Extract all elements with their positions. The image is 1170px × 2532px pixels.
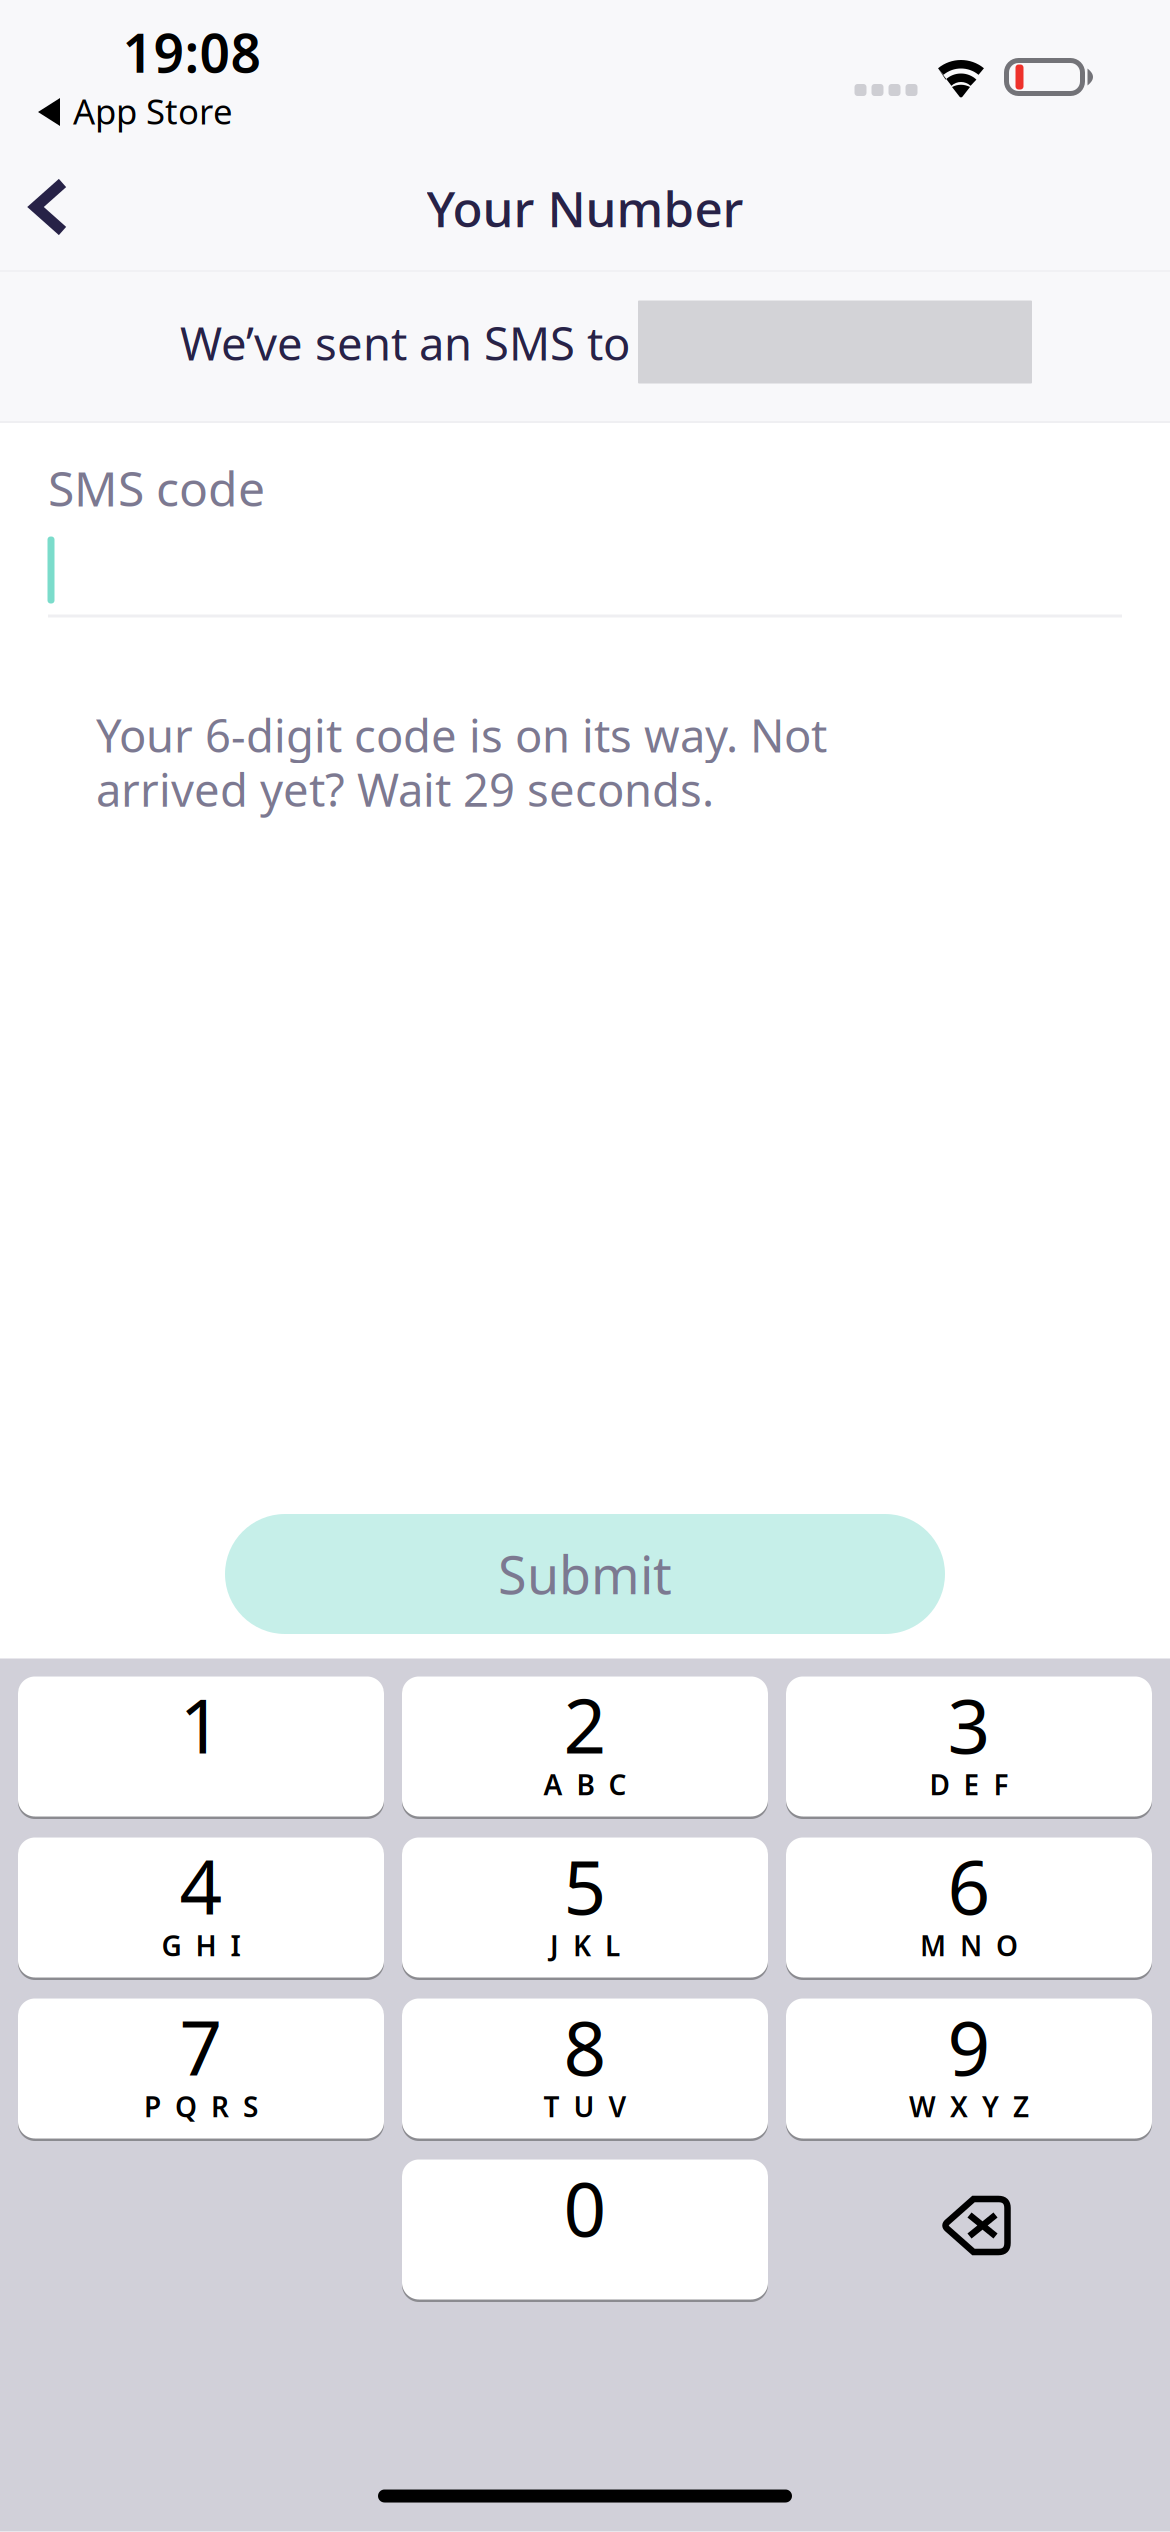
button[interactable]: Submit <box>225 1514 945 1634</box>
button[interactable]: Back <box>0 147 114 267</box>
staticText: J K L <box>550 1927 620 1964</box>
button[interactable]: 2 <box>402 1676 768 1817</box>
staticText: We’ve sent an SMS to <box>180 313 630 373</box>
button[interactable]: Delete <box>786 2159 1152 2300</box>
staticText: 19:08 <box>122 17 261 87</box>
staticText: App Store <box>73 88 233 134</box>
staticText: 4 <box>179 1836 222 1935</box>
button[interactable]: 9 <box>786 1998 1152 2139</box>
staticText: 1 <box>179 1675 222 1774</box>
button[interactable]: 6 <box>786 1837 1152 1978</box>
staticText: D E F <box>929 1766 1008 1803</box>
button[interactable]: 1 <box>18 1676 384 1817</box>
staticText: Your Number <box>426 175 743 241</box>
staticText: W X Y Z <box>909 2088 1029 2125</box>
staticText: 2 <box>563 1675 606 1774</box>
staticText: 8 <box>563 1997 606 2096</box>
staticText: A B C <box>543 1766 626 1803</box>
button[interactable]: 0 <box>402 2159 768 2300</box>
button[interactable]: 5 <box>402 1837 768 1978</box>
button[interactable]: 3 <box>786 1676 1152 1817</box>
staticText: M N O <box>920 1927 1018 1964</box>
button[interactable]: 7 <box>18 1998 384 2139</box>
staticText: 5 <box>563 1836 606 1935</box>
staticText: G H I <box>161 1927 240 1964</box>
button[interactable]: 4 <box>18 1837 384 1978</box>
staticText: 7 <box>179 1997 222 2096</box>
staticText: T U V <box>543 2088 626 2125</box>
staticText: P Q R S <box>144 2088 258 2125</box>
staticText: 3 <box>947 1675 990 1774</box>
staticText: Submit <box>498 1539 672 1609</box>
staticText: 6 <box>947 1836 990 1935</box>
button[interactable]: 8 <box>402 1998 768 2139</box>
staticText: 9 <box>947 1997 990 2096</box>
staticText: SMS code <box>48 456 265 520</box>
staticText: 0 <box>563 2158 606 2257</box>
staticText: Your 6-digit code is on its way. Not arr… <box>96 705 827 819</box>
